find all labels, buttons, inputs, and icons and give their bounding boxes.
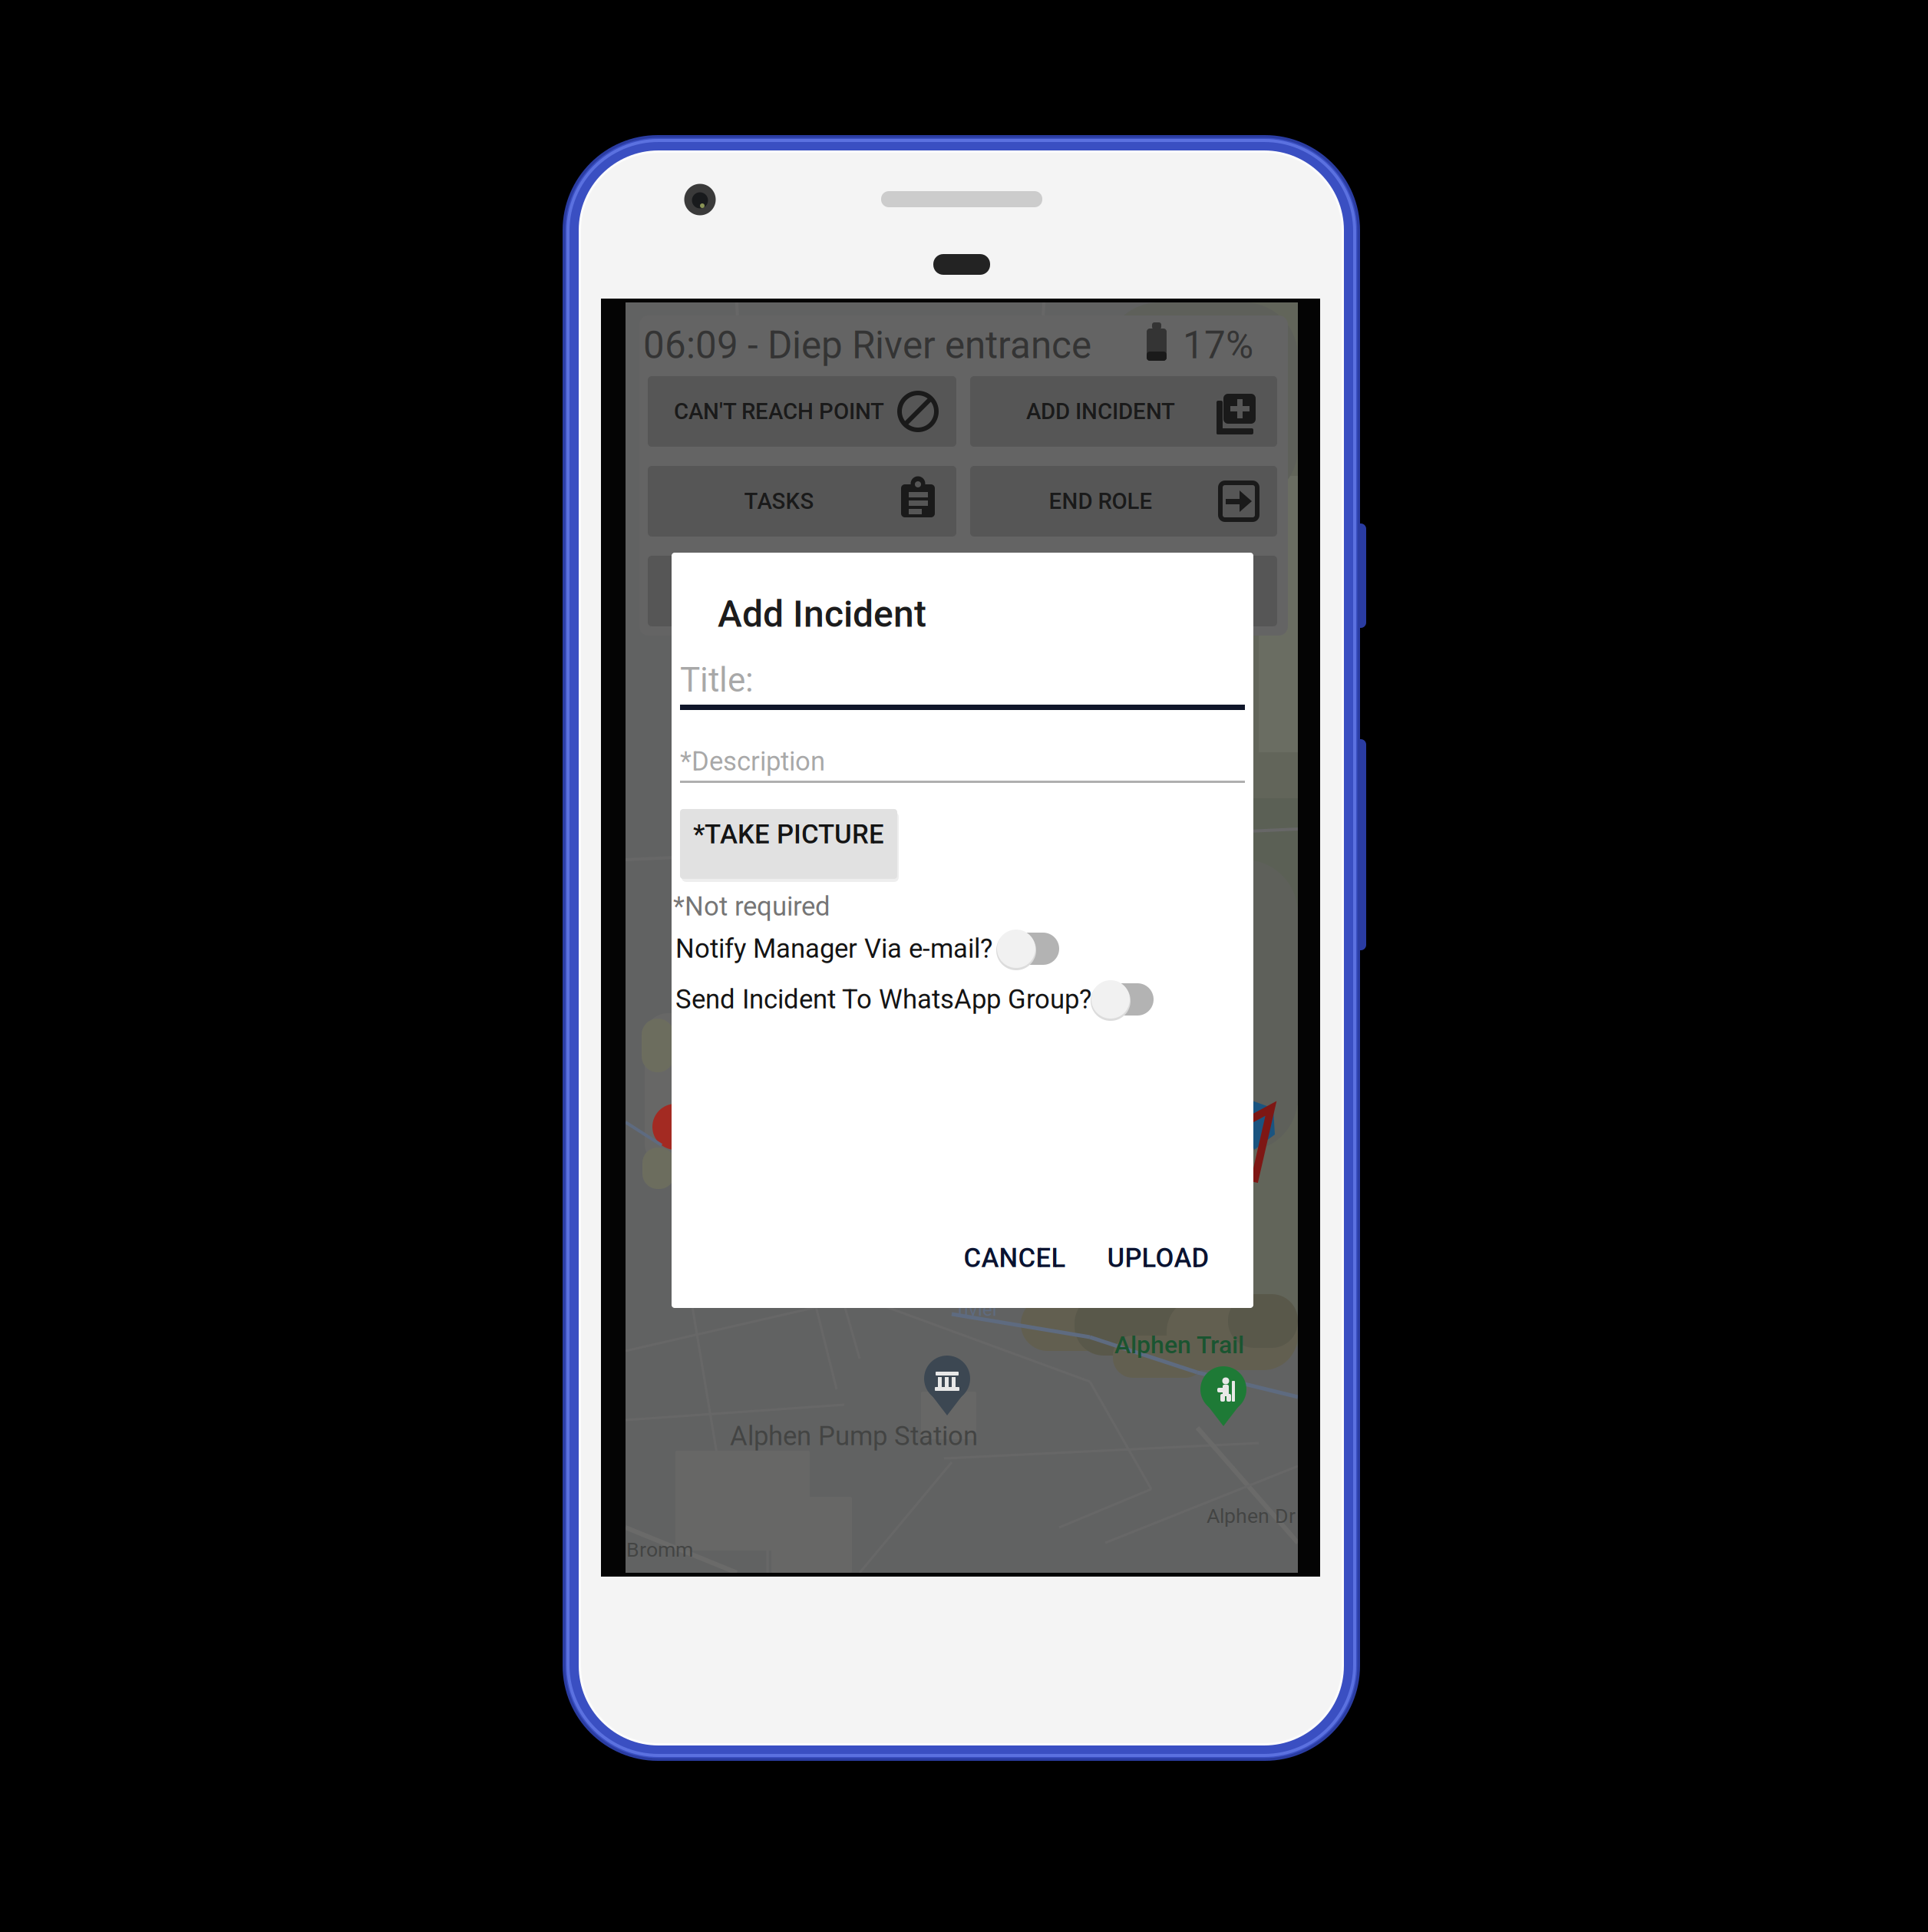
button[interactable]: ADD INCIDENT <box>0 0 1928 1932</box>
staticText: Send Incident To WhatsApp Group? <box>675 984 1091 1015</box>
button[interactable]: Action <box>0 0 1928 1932</box>
staticText: Alphen Trail <box>1114 1330 1244 1359</box>
button[interactable]: END ROLE <box>0 0 1928 1932</box>
button[interactable]: TASKS <box>0 0 1928 1932</box>
staticText: *Not required <box>673 891 830 922</box>
staticText: CANCEL <box>964 1242 1066 1274</box>
staticText: 17% <box>1183 323 1253 368</box>
button[interactable]: Off <box>0 0 1928 1932</box>
staticText: *TAKE PICTURE <box>693 819 884 850</box>
staticText: 06:09 - Diep River entrance <box>643 323 1091 368</box>
staticText: Title: <box>680 660 754 700</box>
staticText: *Description <box>680 746 825 777</box>
button[interactable]: CANCEL <box>0 0 1928 1932</box>
staticText: Add Incident <box>718 592 926 636</box>
staticText: UPLOAD <box>1107 1242 1209 1274</box>
staticText: TASKS <box>744 488 814 514</box>
staticText: Alphen Pump Station <box>730 1421 978 1452</box>
button[interactable]: UPLOAD <box>0 0 1928 1932</box>
staticText: rivier <box>958 1299 999 1320</box>
button[interactable]: Off <box>0 0 1928 1932</box>
staticText: END ROLE <box>1049 488 1152 514</box>
staticText: Bromm <box>626 1538 693 1562</box>
staticText: ADD INCIDENT <box>1026 398 1175 425</box>
staticText: Notify Manager Via e-mail? <box>675 933 992 964</box>
button[interactable]: CAN'T REACH POINT <box>0 0 1928 1932</box>
button[interactable]: Action <box>0 0 1928 1932</box>
staticText: CAN'T REACH POINT <box>674 398 884 425</box>
button[interactable]: *TAKE PICTURE <box>0 0 1928 1932</box>
staticText: Alphen Dr <box>1207 1504 1296 1528</box>
